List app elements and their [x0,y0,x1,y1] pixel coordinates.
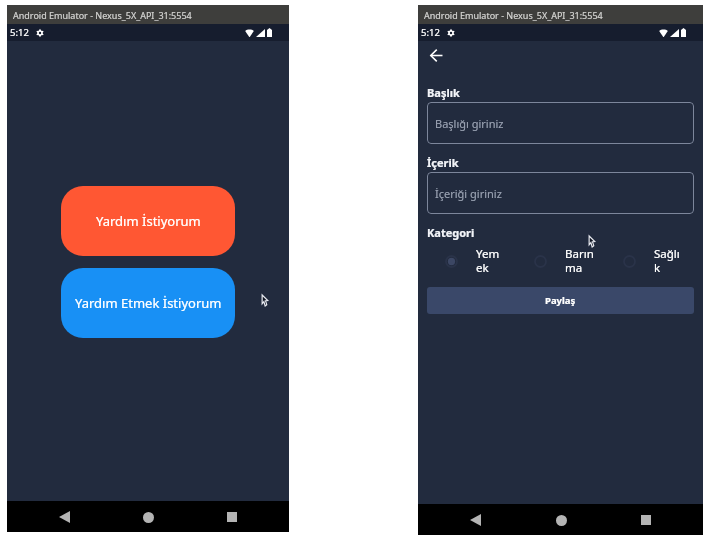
staticText: Yem ek [476,246,508,276]
button[interactable]: Paylaş [427,287,694,314]
button[interactable]: Barın ma [516,246,605,276]
staticText: Yardım Etmek İstiyorum [75,294,222,312]
button[interactable]: Home [548,507,574,533]
button[interactable]: Yardım Etmek İstiyorum [61,268,235,338]
button[interactable]: Yardım İstiyorum [61,186,235,256]
button[interactable]: Recents [219,504,245,530]
button[interactable]: Back [462,507,488,533]
staticText: Kategori [427,225,475,240]
button[interactable]: Back [422,41,451,70]
staticText: Yardım İstiyorum [96,212,201,230]
staticText: Başlığı giriniz [435,116,504,131]
staticText: Başlık [427,85,460,100]
button[interactable]: Recents [633,507,659,533]
staticText: Barın ma [565,246,597,276]
staticText: Android Emulator - Nexus_5X_API_31:5554 [13,9,192,21]
staticText: İçerik [427,155,459,170]
staticText: Sağlı k [654,246,686,276]
button[interactable]: Home [135,504,161,530]
staticText: İçeriği giriniz [435,186,502,201]
staticText: 5:12 [421,26,440,39]
button[interactable]: İçeriği giriniz [427,172,694,214]
button[interactable]: Sağlı k [605,246,694,276]
staticText: Android Emulator - Nexus_5X_API_31:5554 [424,9,603,21]
button[interactable]: Back [51,504,77,530]
staticText: 5:12 [10,26,29,39]
staticText: Paylaş [545,294,576,307]
button[interactable]: Başlığı giriniz [427,102,694,144]
button[interactable]: Yem ek [427,246,516,276]
